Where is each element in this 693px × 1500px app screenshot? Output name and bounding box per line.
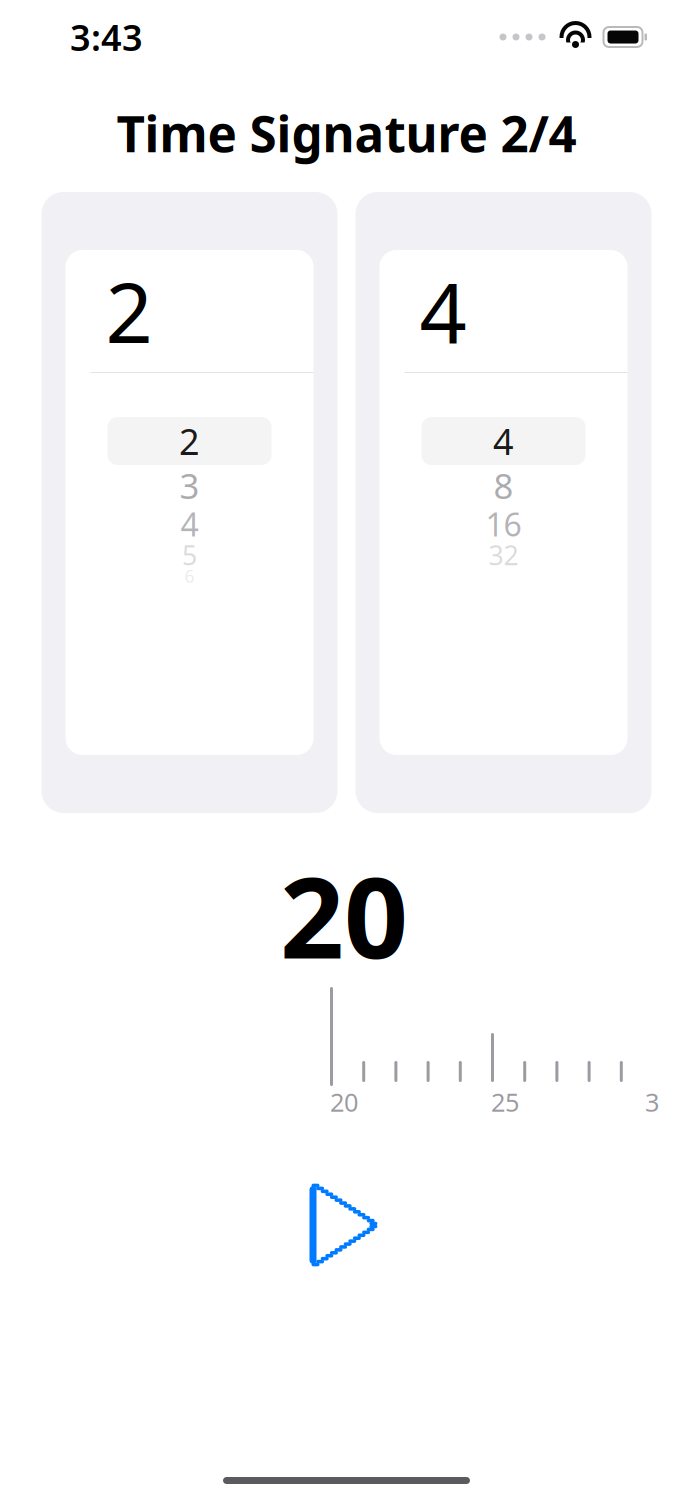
button[interactable]: 3 — [107, 465, 271, 506]
button[interactable]: 16 — [421, 506, 585, 542]
staticText: 3 — [645, 1085, 659, 1119]
staticText: 20 — [280, 841, 408, 989]
staticText: 3 — [179, 462, 199, 508]
button[interactable]: 8 — [421, 465, 585, 506]
staticText: 3:43 — [70, 13, 143, 61]
staticText: 4 — [493, 417, 514, 465]
button[interactable]: 4 — [107, 506, 271, 542]
staticText: 5 — [182, 537, 197, 573]
staticText: 20 — [330, 1085, 358, 1119]
staticText: Time Signature 2/4 — [116, 100, 576, 166]
button[interactable]: Play — [286, 1170, 406, 1280]
staticText: 16 — [485, 503, 521, 545]
button[interactable]: 2 — [107, 417, 271, 465]
staticText: 8 — [493, 462, 513, 508]
staticText: 4 — [419, 256, 466, 366]
staticText: 25 — [491, 1085, 519, 1119]
staticText: 4 — [180, 503, 198, 545]
staticText: 32 — [488, 537, 518, 573]
button[interactable]: 5 — [107, 542, 271, 568]
button[interactable]: 32 — [421, 542, 585, 568]
staticText: 2 — [105, 256, 152, 366]
staticText: 6 — [184, 564, 194, 587]
button[interactable]: 4 — [421, 417, 585, 465]
staticText: 2 — [179, 417, 200, 465]
